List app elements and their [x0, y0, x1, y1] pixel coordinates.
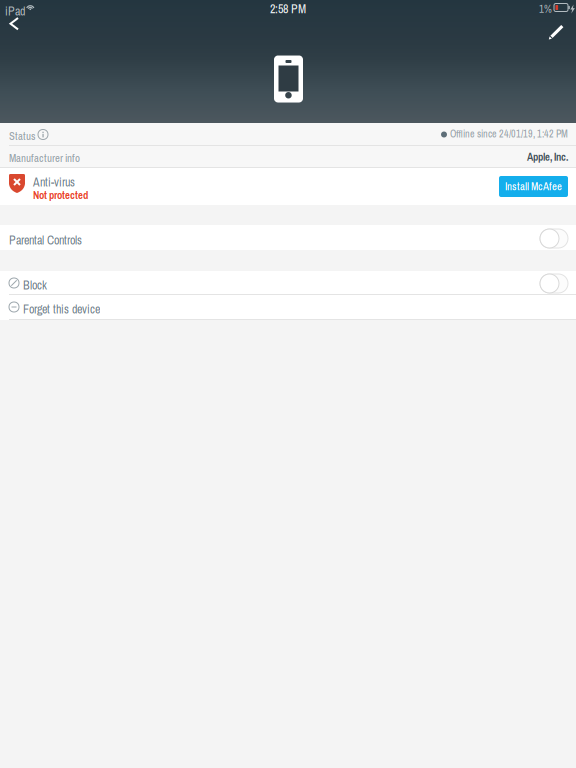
staticText: Block [23, 277, 47, 293]
button[interactable]: Install McAfee [499, 176, 568, 197]
staticText: Status [9, 129, 36, 143]
staticText: Manufacturer info [9, 151, 80, 165]
staticText: Parental Controls [9, 232, 82, 248]
button[interactable]: Block [0, 271, 576, 295]
button[interactable]: Forget this device [0, 295, 576, 320]
staticText: Forget this device [23, 301, 100, 317]
staticText: Offline since 24/01/19, 1:42 PM [450, 127, 568, 141]
staticText: Apple, Inc. [527, 150, 568, 164]
button[interactable]: Back [2, 17, 38, 47]
staticText: Anti-virus [33, 174, 75, 190]
staticText: 2:58 PM [270, 1, 306, 17]
staticText: 1% [539, 2, 552, 16]
staticText: iPad [5, 3, 25, 19]
button[interactable]: Edit [536, 17, 572, 47]
button[interactable]: Parental Controls [0, 225, 576, 250]
staticText: Install McAfee [505, 179, 562, 194]
staticText: Not protected [33, 188, 88, 202]
